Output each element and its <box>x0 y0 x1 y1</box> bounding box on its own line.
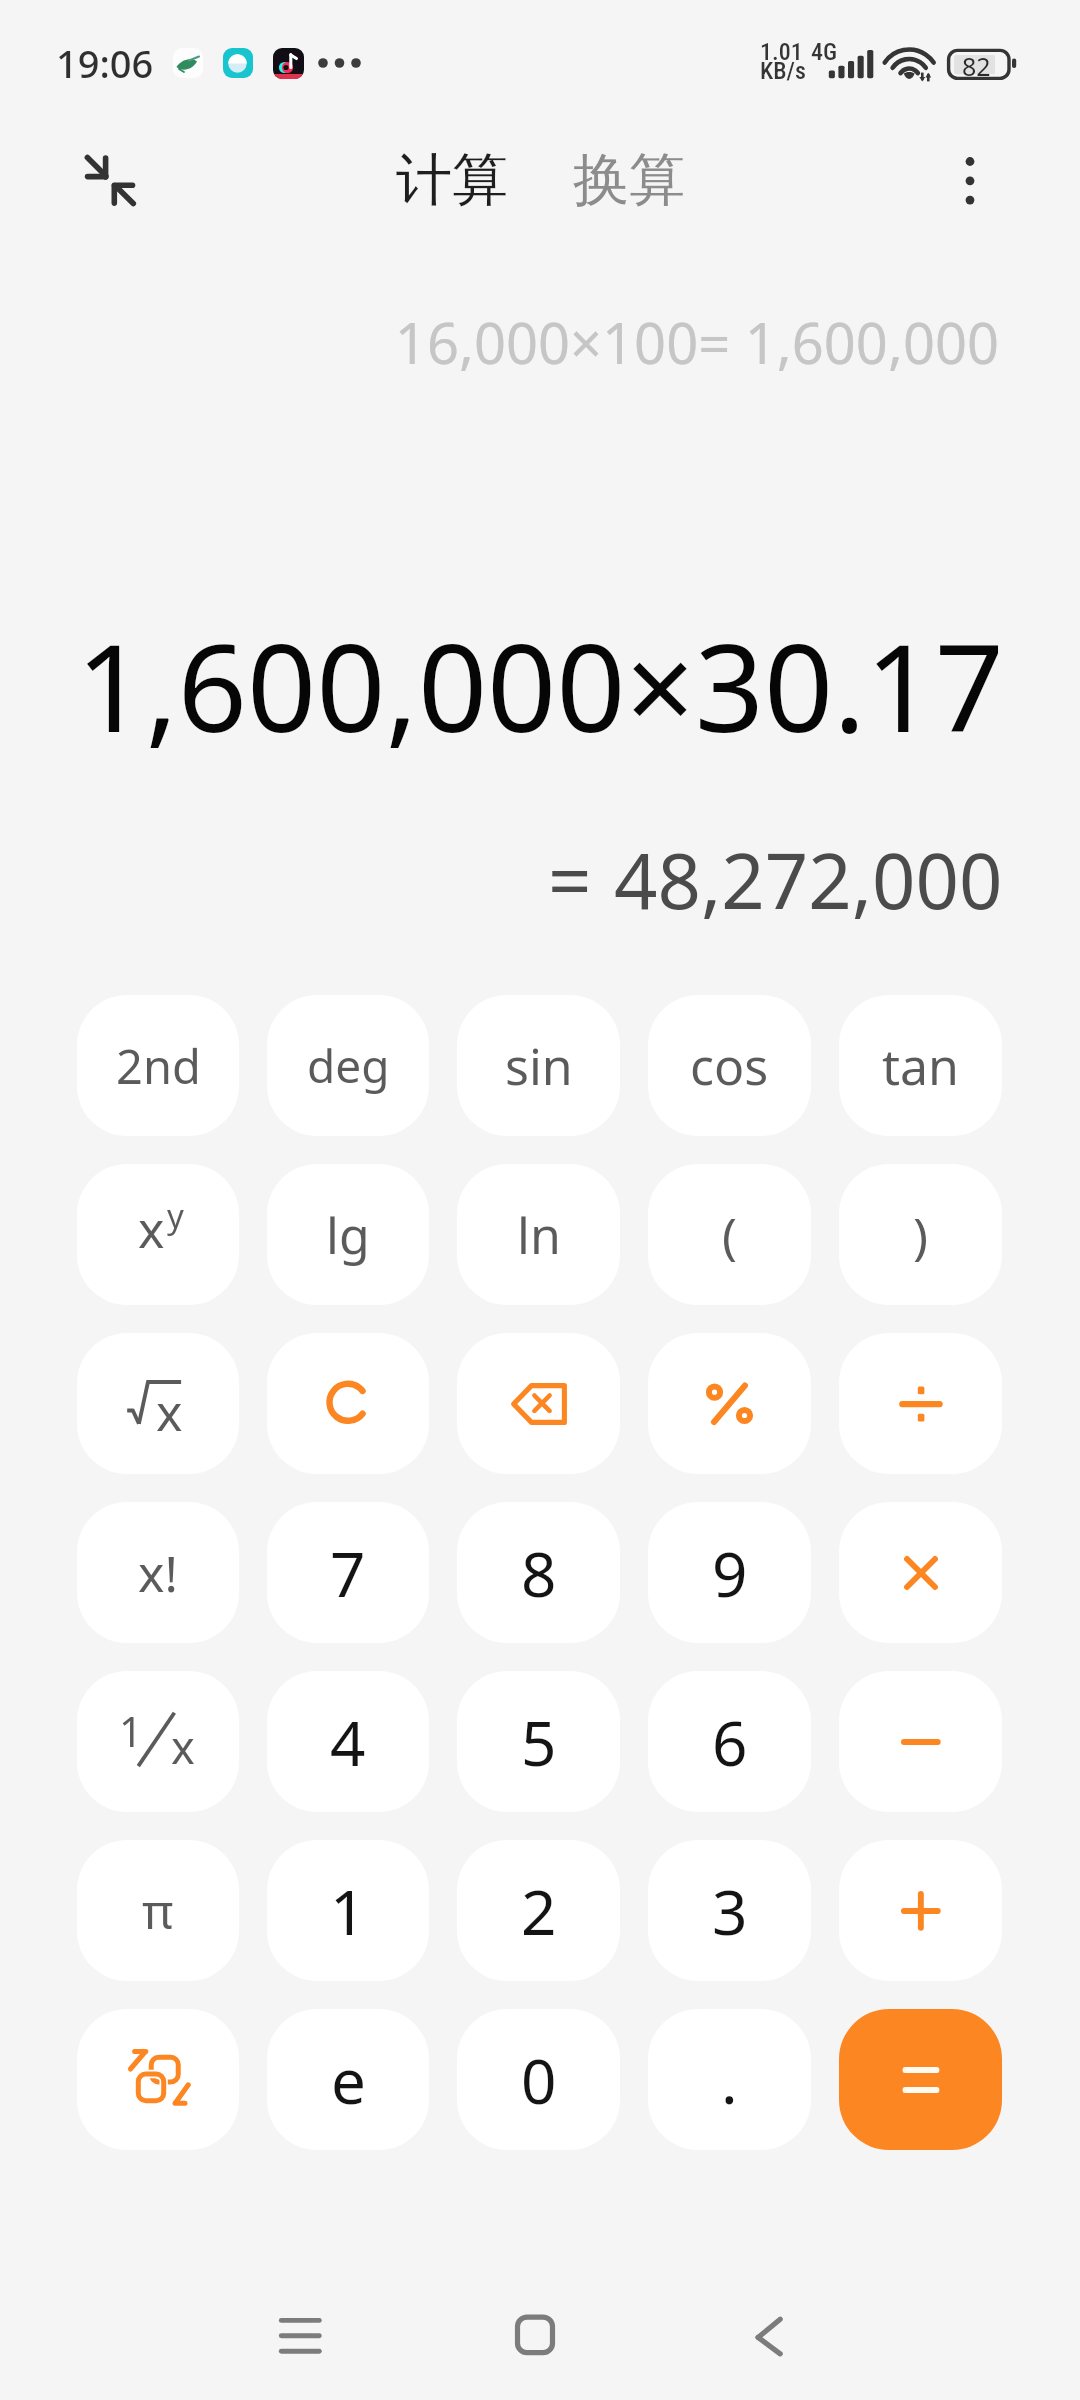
staticText: 1.01 <box>760 38 803 66</box>
staticText: 19:06 <box>56 37 154 89</box>
staticText: . <box>721 2038 738 2122</box>
staticText: e <box>331 2038 366 2122</box>
button[interactable]: . <box>648 2009 811 2150</box>
button[interactable]: 4 <box>267 1671 429 1812</box>
button[interactable]: Equals <box>839 2009 1002 2150</box>
button[interactable]: Home <box>475 2275 595 2395</box>
staticText: = <box>548 828 592 932</box>
staticText: x <box>171 1716 195 1777</box>
staticText: cos <box>690 1032 769 1100</box>
staticText: sin <box>505 1032 573 1100</box>
staticText: π <box>142 1878 174 1943</box>
staticText: 2 <box>521 1869 557 1953</box>
button[interactable]: Delete <box>457 1333 620 1474</box>
button[interactable]: ) <box>839 1164 1002 1305</box>
button[interactable]: 7 <box>267 1502 429 1643</box>
button[interactable]: x! <box>77 1502 239 1643</box>
button[interactable]: ( <box>648 1164 811 1305</box>
staticText: x! <box>138 1539 178 1607</box>
staticText: 0 <box>521 2038 557 2122</box>
button[interactable]: ln <box>457 1164 620 1305</box>
button[interactable]: 2 <box>457 1840 620 1981</box>
button[interactable]: Divide <box>839 1333 1002 1474</box>
staticText: ln <box>517 1201 561 1269</box>
staticText: ( <box>722 1201 737 1269</box>
button[interactable]: e <box>267 2009 429 2150</box>
staticText: 4G <box>811 38 838 66</box>
staticText: 8 <box>521 1531 557 1615</box>
button[interactable]: Multiply <box>839 1502 1002 1643</box>
button[interactable]: deg <box>267 995 429 1136</box>
staticText: KB/s <box>760 57 806 85</box>
button[interactable]: 计算 <box>388 142 516 218</box>
staticText: 82 <box>962 49 991 83</box>
button[interactable]: 8 <box>457 1502 620 1643</box>
button[interactable]: 6 <box>648 1671 811 1812</box>
staticText: 6 <box>712 1700 748 1784</box>
button[interactable]: 0 <box>457 2009 620 2150</box>
button[interactable]: lg <box>267 1164 429 1305</box>
button[interactable]: Add <box>839 1840 1002 1981</box>
staticText: 1 <box>330 1869 366 1953</box>
button[interactable]: cos <box>648 995 811 1136</box>
staticText: 16,000×100= 1,600,000 <box>394 304 999 380</box>
button[interactable]: 1 <box>267 1840 429 1981</box>
staticText: x <box>156 1378 183 1438</box>
staticText: 换算 <box>573 145 685 216</box>
button[interactable]: Recent apps <box>240 2275 360 2395</box>
button[interactable]: More options <box>935 145 1005 215</box>
staticText: 计算 <box>396 145 508 216</box>
button[interactable]: sin <box>457 995 620 1136</box>
staticText: 1 <box>119 1703 143 1759</box>
button[interactable]: Back <box>709 2275 829 2395</box>
staticText: 5 <box>521 1700 557 1784</box>
button[interactable]: 换算 <box>565 142 693 218</box>
staticText: 2nd <box>116 1034 201 1098</box>
button[interactable]: Percent <box>648 1333 811 1474</box>
staticText: x <box>138 1195 165 1255</box>
button[interactable]: x to the power y <box>77 1164 239 1305</box>
button[interactable]: tan <box>839 995 1002 1136</box>
button[interactable]: One over x <box>77 1671 239 1812</box>
button[interactable]: Square root <box>77 1333 239 1474</box>
staticText: 3 <box>712 1869 748 1953</box>
button[interactable]: Clear <box>267 1333 429 1474</box>
button[interactable]: π <box>77 1840 239 1981</box>
button[interactable]: Subtract <box>839 1671 1002 1812</box>
staticText: lg <box>326 1201 370 1269</box>
staticText: 1,600,000×30.17 <box>76 603 1004 768</box>
staticText: deg <box>307 1034 390 1097</box>
button[interactable]: Collapse <box>66 137 154 225</box>
staticText: 48,272,000 <box>614 828 1003 932</box>
staticText: tan <box>882 1032 959 1100</box>
button[interactable]: 3 <box>648 1840 811 1981</box>
staticText: ) <box>913 1201 928 1269</box>
button[interactable]: 9 <box>648 1502 811 1643</box>
button[interactable]: 2nd <box>77 995 239 1136</box>
staticText: 9 <box>712 1531 748 1615</box>
staticText: 4 <box>330 1700 366 1784</box>
staticText: y <box>167 1193 184 1238</box>
staticText: 7 <box>330 1531 366 1615</box>
button[interactable]: 5 <box>457 1671 620 1812</box>
button[interactable]: Unit converter <box>77 2009 239 2150</box>
